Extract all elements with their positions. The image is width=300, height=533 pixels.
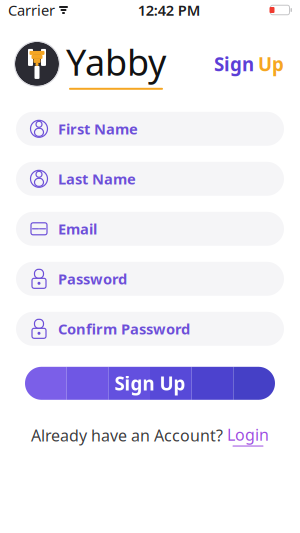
staticText: 12:42 PM <box>138 0 201 20</box>
button[interactable]: Confirm Password <box>16 312 284 346</box>
staticText: Sign <box>214 51 254 76</box>
staticText: Last Name <box>58 169 136 189</box>
staticText: Confirm Password <box>58 319 190 339</box>
staticText: Up <box>258 51 284 76</box>
button[interactable]: Sign <box>212 45 286 82</box>
staticText: Email <box>58 219 97 239</box>
button[interactable]: First Name <box>16 112 284 146</box>
staticText: Password <box>58 269 127 289</box>
staticText: Login <box>227 424 269 445</box>
staticText: Sign Up <box>114 371 185 396</box>
button[interactable]: Password <box>16 262 284 296</box>
button[interactable]: Email <box>16 212 284 246</box>
button[interactable]: Last Name <box>16 162 284 196</box>
button[interactable]: Sign Up <box>25 367 275 400</box>
staticText: First Name <box>58 119 138 139</box>
staticText: Carrier <box>8 0 55 20</box>
button[interactable]: Login <box>227 424 269 446</box>
staticText: Yabby <box>66 38 166 86</box>
staticText: Already have an Account? <box>31 425 223 446</box>
